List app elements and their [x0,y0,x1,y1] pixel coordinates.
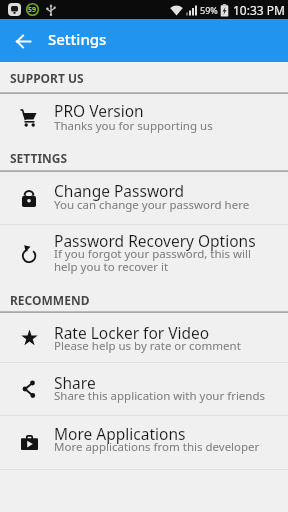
staticText: PRO Version [54,100,144,121]
staticText: Change Password [54,180,185,201]
button[interactable]: Share [0,363,288,415]
staticText: 59 [28,5,37,15]
button[interactable]: PRO Version [0,94,288,142]
button[interactable]: Rate Locker for Video [0,313,288,362]
staticText: SETTINGS [10,150,68,166]
staticText: Thanks you for supporting us [54,118,213,134]
button[interactable]: Password Recovery Options [0,225,288,283]
staticText: Share this application with your friends [54,388,266,404]
staticText: Share [54,372,96,393]
staticText: RECOMMEND [10,292,90,308]
staticText: Please help us by rate or comment [54,338,241,354]
button[interactable]: Change Password [0,172,288,224]
staticText: Password Recovery Options [54,230,256,251]
staticText: 59% [200,4,218,16]
staticText: If you forgot your password, this will h… [54,246,272,274]
staticText: SUPPORT US [10,70,84,86]
button[interactable] [0,19,43,62]
staticText: More Applications [54,423,186,444]
button[interactable]: More Applications [0,416,288,469]
staticText: Settings [48,29,107,49]
staticText: 10:33 PM [233,2,285,18]
staticText: More applications from this developer [54,439,260,455]
staticText: You can change your password here [54,197,250,213]
staticText: Rate Locker for Video [54,322,210,343]
